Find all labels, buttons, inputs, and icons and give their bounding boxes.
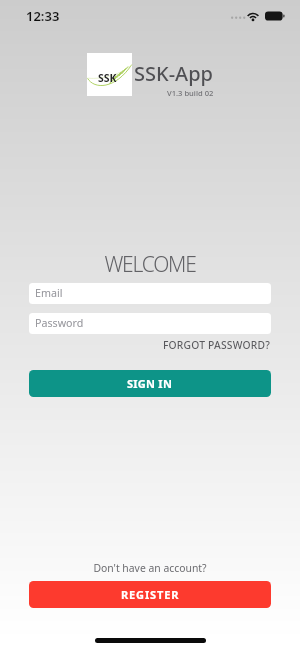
button[interactable]: Email (29, 283, 271, 304)
button[interactable]: Password (29, 313, 271, 334)
staticText: V1.3 build 02 (167, 88, 214, 98)
staticText: Don't have an account? (0, 561, 300, 575)
button[interactable]: FORGOT PASSWORD? (162, 336, 270, 354)
staticText: SSK-App (134, 60, 213, 87)
staticText: WELCOME (0, 250, 300, 279)
staticText: SSK (98, 71, 117, 85)
staticText: 12:33 (26, 7, 60, 25)
button[interactable]: SIGN IN (29, 370, 271, 397)
other: Wi-Fi (246, 11, 260, 21)
other: Battery full (265, 11, 285, 21)
other: Cellular signal (231, 12, 241, 20)
staticText: REGISTER (121, 587, 180, 602)
staticText: Email (35, 286, 63, 301)
other: SSK logo (87, 53, 132, 96)
staticText: FORGOT PASSWORD? (162, 338, 270, 352)
staticText: SIGN IN (127, 376, 173, 391)
button[interactable]: REGISTER (29, 581, 271, 608)
staticText: Password (35, 316, 84, 331)
